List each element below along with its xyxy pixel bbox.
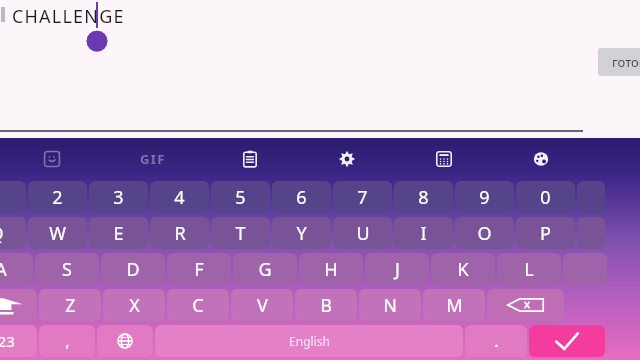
button[interactable]: готово xyxy=(598,48,640,76)
button[interactable]: Y xyxy=(272,217,331,249)
button[interactable] xyxy=(577,217,605,249)
button[interactable]: K xyxy=(431,253,495,285)
button[interactable]: L xyxy=(497,253,561,285)
staticText: U xyxy=(356,221,370,246)
button[interactable]: Clipboard xyxy=(201,138,298,179)
staticText: 7 xyxy=(357,185,368,210)
staticText: 123 xyxy=(0,331,15,351)
button[interactable]: V xyxy=(231,289,293,321)
staticText: G xyxy=(258,257,272,282)
staticText: CHALLENGE xyxy=(12,4,125,29)
button[interactable]: Shift xyxy=(0,289,37,321)
button[interactable]: W xyxy=(28,217,87,249)
button[interactable]: Stickers xyxy=(0,138,104,179)
button[interactable]: D xyxy=(101,253,165,285)
button[interactable]: T xyxy=(211,217,270,249)
button[interactable]: Z xyxy=(39,289,101,321)
staticText: GIF xyxy=(140,150,166,168)
button[interactable]: 4 xyxy=(150,181,209,213)
button[interactable] xyxy=(577,181,605,213)
button[interactable]: H xyxy=(299,253,363,285)
staticText: готово xyxy=(612,53,640,71)
button[interactable]: 2 xyxy=(28,181,87,213)
staticText: N xyxy=(383,293,397,318)
staticText: P xyxy=(540,221,551,246)
button[interactable]: English xyxy=(155,325,463,357)
button[interactable]: 0 xyxy=(516,181,575,213)
staticText: Y xyxy=(296,221,307,246)
staticText: D xyxy=(126,257,140,282)
button[interactable]: M xyxy=(423,289,485,321)
staticText: L xyxy=(524,257,534,282)
staticText: E xyxy=(113,221,124,246)
button[interactable]: Themes xyxy=(492,138,589,179)
button[interactable]: GIF xyxy=(104,138,201,179)
staticText: Q xyxy=(0,221,4,246)
button[interactable]: Change language xyxy=(97,325,153,357)
button[interactable]: 123 xyxy=(0,325,37,357)
staticText: S xyxy=(62,257,72,282)
button[interactable]: U xyxy=(333,217,392,249)
button[interactable]: 6 xyxy=(272,181,331,213)
staticText: , xyxy=(65,330,70,352)
button[interactable]: 9 xyxy=(455,181,514,213)
staticText: X xyxy=(129,293,140,318)
button[interactable]: O xyxy=(455,217,514,249)
button[interactable]: 5 xyxy=(211,181,270,213)
staticText: 4 xyxy=(174,185,185,210)
staticText: I xyxy=(420,221,427,246)
button[interactable]: 8 xyxy=(394,181,453,213)
staticText: 6 xyxy=(296,185,307,210)
button[interactable]: , xyxy=(39,325,95,357)
button[interactable]: 3 xyxy=(89,181,148,213)
staticText: O xyxy=(477,221,492,246)
staticText: Z xyxy=(65,293,76,318)
staticText: K xyxy=(457,257,469,282)
staticText: 0 xyxy=(540,185,551,210)
staticText: F xyxy=(194,257,204,282)
button[interactable]: Backspace xyxy=(487,289,564,321)
staticText: C xyxy=(192,293,204,318)
button[interactable]: X xyxy=(103,289,165,321)
button[interactable]: Settings xyxy=(298,138,395,179)
button[interactable]: 7 xyxy=(333,181,392,213)
button[interactable]: S xyxy=(35,253,99,285)
staticText: M xyxy=(446,293,463,318)
button[interactable]: Q xyxy=(0,217,26,249)
button[interactable]: J xyxy=(365,253,429,285)
button[interactable]: P xyxy=(516,217,575,249)
staticText: A xyxy=(0,257,7,282)
button[interactable]: . xyxy=(465,325,527,357)
staticText: 3 xyxy=(113,185,124,210)
staticText: W xyxy=(49,221,66,246)
button[interactable]: I xyxy=(394,217,453,249)
button[interactable]: E xyxy=(89,217,148,249)
staticText: English xyxy=(289,333,330,349)
button[interactable]: A xyxy=(0,253,33,285)
staticText: . xyxy=(494,330,499,352)
staticText: 5 xyxy=(235,185,246,210)
button[interactable]: Enter xyxy=(529,325,605,357)
staticText: H xyxy=(324,257,338,282)
staticText: T xyxy=(235,221,246,246)
button[interactable]: Calculator xyxy=(395,138,492,179)
staticText: 9 xyxy=(479,185,490,210)
button[interactable]: R xyxy=(150,217,209,249)
button[interactable]: C xyxy=(167,289,229,321)
button[interactable]: N xyxy=(359,289,421,321)
button[interactable]: F xyxy=(167,253,231,285)
button[interactable]: G xyxy=(233,253,297,285)
staticText: B xyxy=(320,293,332,318)
staticText: J xyxy=(395,257,400,282)
staticText: 2 xyxy=(52,185,63,210)
staticText: R xyxy=(174,221,186,246)
staticText: V xyxy=(257,293,268,318)
staticText: 8 xyxy=(418,185,429,210)
button[interactable]: B xyxy=(295,289,357,321)
